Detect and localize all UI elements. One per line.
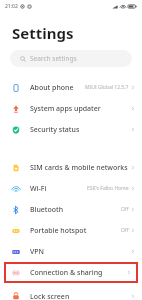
staticText: Settings bbox=[12, 23, 74, 43]
staticText: Portable hotspot bbox=[30, 226, 87, 236]
staticText: Off bbox=[121, 206, 129, 213]
staticText: Bluetooth bbox=[30, 205, 64, 215]
staticText: Security status bbox=[30, 125, 80, 135]
other: Lock screen bbox=[12, 292, 20, 300]
button[interactable]: Bluetooth bbox=[0, 199, 142, 220]
other: Connection and sharing bbox=[12, 269, 20, 277]
staticText: System apps updater bbox=[30, 104, 101, 114]
staticText: Search settings bbox=[30, 54, 77, 63]
button[interactable]: Search settings bbox=[10, 50, 132, 67]
other: Wi-Fi bbox=[12, 185, 20, 193]
other: Security status bbox=[12, 126, 20, 134]
staticText: Lock screen bbox=[30, 292, 70, 300]
button[interactable]: Lock screen bbox=[0, 292, 142, 300]
button[interactable]: SIM cards and mobile networks bbox=[0, 157, 142, 178]
button[interactable]: System apps updater bbox=[0, 98, 142, 119]
other: About phone bbox=[12, 84, 20, 92]
button[interactable]: Connection and sharing bbox=[4, 262, 138, 283]
staticText: Wi-Fi bbox=[30, 184, 47, 194]
other: System apps updater bbox=[12, 105, 20, 113]
button[interactable]: Security status bbox=[0, 119, 142, 140]
staticText: Off bbox=[121, 227, 129, 234]
button[interactable]: Portable hotspot bbox=[0, 220, 142, 241]
button[interactable]: Wi-Fi bbox=[0, 178, 142, 199]
button[interactable]: VPN bbox=[0, 241, 142, 262]
other: SIM cards and mobile networks bbox=[12, 164, 20, 172]
staticText: VPN bbox=[30, 247, 45, 257]
other: Bluetooth bbox=[12, 206, 20, 214]
staticText: MIUI Global 12.5.7 bbox=[85, 84, 129, 91]
staticText: About phone bbox=[30, 83, 74, 93]
staticText: ESK's Falbo Home bbox=[87, 185, 129, 192]
other: VPN bbox=[12, 248, 20, 256]
button[interactable]: About phone bbox=[0, 77, 142, 98]
staticText: 21:02 bbox=[5, 3, 18, 10]
other: Portable hotspot bbox=[12, 227, 20, 235]
staticText: SIM cards & mobile networks bbox=[30, 163, 128, 173]
staticText: Connection & sharing bbox=[30, 268, 103, 278]
